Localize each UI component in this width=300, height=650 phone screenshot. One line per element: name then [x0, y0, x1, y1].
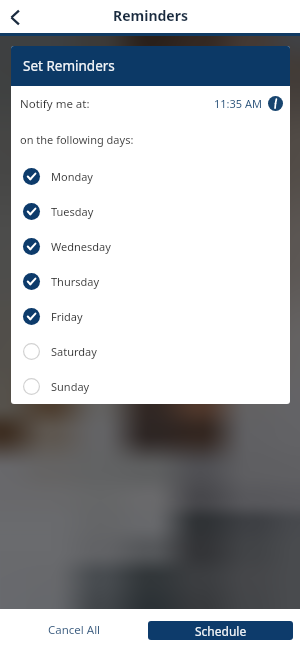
staticText: Cancel All: [48, 622, 101, 638]
button[interactable]: Monday: [11, 159, 290, 194]
staticText: Tuesday: [51, 204, 94, 219]
staticText: Thursday: [51, 274, 100, 289]
button[interactable]: Thursday: [11, 264, 290, 299]
staticText: Friday: [51, 309, 83, 324]
staticText: Sunday: [51, 379, 90, 394]
button[interactable]: Schedule: [148, 621, 293, 640]
staticText: on the following days:: [20, 132, 134, 147]
button[interactable]: Friday: [11, 299, 290, 334]
staticText: 11:35 AM: [214, 96, 262, 111]
button[interactable]: Back: [0, 2, 30, 32]
button[interactable]: Saturday: [11, 334, 290, 369]
button[interactable]: Sunday: [11, 369, 290, 404]
staticText: Saturday: [51, 344, 97, 359]
staticText: Set Reminders: [23, 57, 115, 75]
button[interactable]: Cancel All: [0, 609, 148, 650]
button[interactable]: 11:35 AM: [214, 96, 283, 111]
button[interactable]: Tuesday: [11, 194, 290, 229]
staticText: Notify me at:: [20, 96, 90, 112]
staticText: Wednesday: [51, 239, 111, 254]
staticText: Schedule: [195, 623, 247, 639]
staticText: Reminders: [113, 6, 188, 25]
staticText: Monday: [51, 169, 93, 184]
button[interactable]: Wednesday: [11, 229, 290, 264]
